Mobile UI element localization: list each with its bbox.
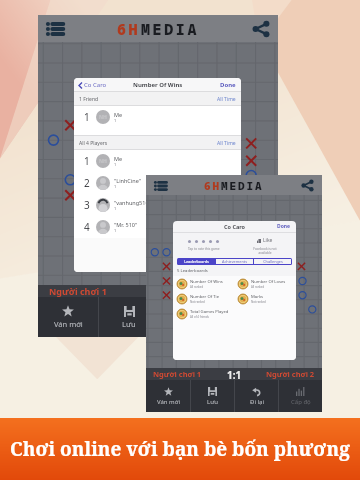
- staticText: Me: [114, 155, 123, 162]
- button[interactable]: Ván mới: [38, 297, 98, 337]
- staticText: All ranked: [251, 285, 265, 289]
- staticText: Lưu: [122, 319, 136, 329]
- button[interactable]: Done: [220, 81, 236, 89]
- staticText: Total Games Played: [190, 309, 229, 315]
- button[interactable]: Cấp độ: [219, 297, 278, 337]
- staticText: 6H: [204, 178, 221, 193]
- button[interactable]: Lưu: [99, 297, 158, 337]
- staticText: 1: [84, 110, 90, 124]
- staticText: All ranked: [190, 285, 204, 289]
- staticText: 1: [114, 162, 117, 167]
- button[interactable]: Share: [249, 17, 273, 41]
- staticText: Achievements: [222, 259, 247, 264]
- staticText: 1: [114, 184, 117, 189]
- button[interactable]: Share: [298, 176, 317, 195]
- button[interactable]: Đi lại: [235, 380, 278, 412]
- button[interactable]: Achievements: [216, 259, 253, 264]
- staticText: Ván mới: [157, 398, 180, 406]
- button[interactable]: 1: [74, 106, 241, 128]
- staticText: 1: [84, 154, 90, 168]
- staticText: 5 Leaderboards: [177, 268, 208, 274]
- button[interactable]: 2: [74, 172, 241, 194]
- staticText: Not ranked: [190, 300, 205, 304]
- staticText: Leaderboards: [184, 259, 209, 264]
- staticText: Number Of Wins: [133, 81, 183, 89]
- staticText: Challenges: [263, 259, 283, 264]
- button[interactable]: Menu: [151, 176, 170, 195]
- staticText: 4: [84, 220, 90, 234]
- staticText: Tap to rate this game: [188, 247, 220, 251]
- staticText: Người chơi 1: [153, 369, 202, 379]
- staticText: "Mr. 510": [114, 221, 138, 228]
- staticText: "LinhCine": [114, 177, 141, 184]
- staticText: Co Caro: [84, 81, 107, 89]
- staticText: Chơi online với bạn bè bốn phương: [10, 436, 350, 462]
- staticText: Cấp độ: [291, 398, 311, 406]
- button[interactable]: Done: [277, 223, 291, 230]
- button[interactable]: All Time: [217, 96, 236, 103]
- staticText: Facebook is not available: [253, 247, 277, 255]
- staticText: Lưu: [207, 398, 218, 406]
- button[interactable]: Challenges: [254, 259, 291, 264]
- button[interactable]: Cấp độ: [279, 380, 322, 412]
- button[interactable]: All Time: [217, 140, 236, 147]
- button[interactable]: Menu: [43, 17, 67, 41]
- staticText: 2: [84, 176, 90, 190]
- button[interactable]: 1: [74, 150, 241, 172]
- button[interactable]: Marks: [238, 291, 296, 306]
- staticText: Number Of Loses: [251, 279, 286, 285]
- button[interactable]: Co Caro: [78, 81, 107, 89]
- staticText: 3: [84, 198, 90, 212]
- staticText: Marks: [251, 294, 264, 300]
- staticText: Người chơi 1: [49, 285, 107, 297]
- staticText: Đi lại: [250, 398, 264, 406]
- button[interactable]: Number Of Loses: [238, 276, 296, 291]
- staticText: All of 4 friends: [190, 315, 209, 319]
- staticText: NH: [99, 158, 107, 165]
- staticText: 1: [114, 118, 117, 123]
- staticText: "vanhung510": [114, 199, 151, 206]
- staticText: NH: [99, 114, 107, 121]
- button[interactable]: Đi lại: [159, 297, 218, 337]
- staticText: MEDIA: [141, 19, 200, 39]
- staticText: Number Of Wins: [190, 279, 223, 285]
- button[interactable]: Lưu: [191, 380, 234, 412]
- staticText: Đi lại: [180, 319, 198, 329]
- button[interactable]: Total Games Played: [177, 306, 234, 321]
- staticText: Co Caro: [224, 223, 246, 230]
- button[interactable]: Ván mới: [146, 380, 190, 412]
- staticText: 1: [114, 228, 117, 233]
- staticText: All 4 Players: [79, 140, 108, 147]
- staticText: 6H: [117, 19, 141, 39]
- staticText: MEDIA: [221, 178, 264, 193]
- staticText: Người chơi 2: [266, 369, 315, 379]
- staticText: Number Of Tie: [190, 294, 220, 300]
- staticText: 1: [114, 206, 117, 211]
- staticText: Not ranked: [251, 300, 266, 304]
- staticText: 1 Friend: [79, 96, 99, 103]
- button[interactable]: Leaderboards: [178, 259, 215, 264]
- button[interactable]: Number Of Tie: [177, 291, 234, 306]
- button[interactable]: Number Of Wins: [177, 276, 234, 291]
- staticText: Like: [263, 237, 273, 244]
- button[interactable]: 4: [74, 216, 241, 238]
- button[interactable]: 3: [74, 194, 241, 216]
- staticText: Me: [114, 111, 123, 118]
- staticText: Ván mới: [54, 319, 83, 329]
- staticText: 1:1: [227, 368, 242, 380]
